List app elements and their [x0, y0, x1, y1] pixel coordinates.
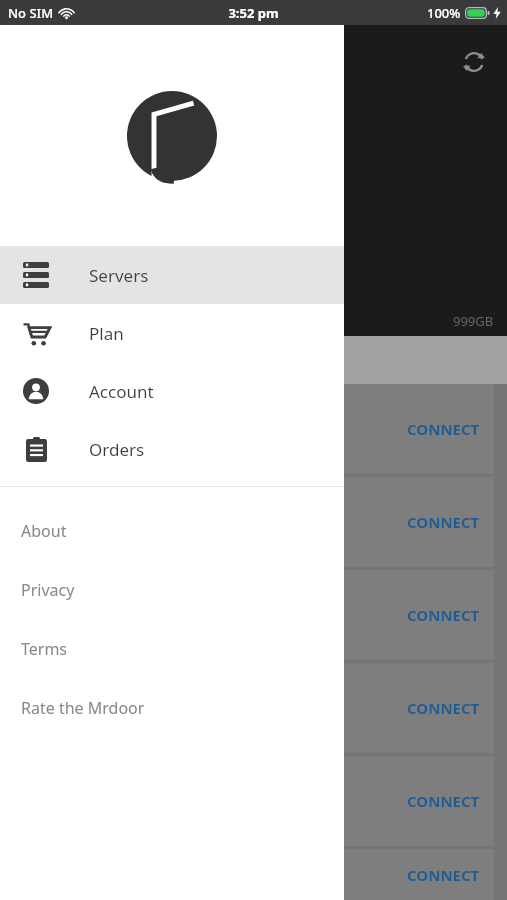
button[interactable]: Servers — [0, 246, 344, 304]
button[interactable]: About — [0, 501, 344, 560]
staticText: Rate the Mrdoor — [21, 697, 145, 719]
button[interactable]: Rate the Mrdoor — [0, 678, 344, 737]
button[interactable]: CONNECT — [0, 570, 494, 660]
button[interactable]: Plan — [0, 304, 344, 362]
button[interactable]: CONNECT — [0, 384, 494, 474]
staticText: Terms — [21, 638, 68, 660]
button[interactable]: CONNECT — [0, 477, 494, 567]
button[interactable]: Renew — [0, 336, 507, 384]
button[interactable]: CONNECT — [0, 756, 494, 846]
staticText: 3:52 pm — [228, 4, 279, 22]
button[interactable]: Account — [0, 362, 344, 420]
staticText: Account — [89, 380, 154, 403]
button[interactable]: CONNECT — [0, 663, 494, 753]
button[interactable]: Refresh — [457, 45, 491, 79]
staticText: CONNECT — [407, 865, 480, 885]
staticText: About — [21, 520, 67, 542]
button[interactable]: CONNECT — [0, 849, 494, 900]
staticText: 100% — [427, 4, 461, 22]
staticText: Plan — [89, 322, 124, 345]
staticText: CONNECT — [407, 419, 480, 439]
staticText: Servers — [89, 264, 149, 287]
staticText: CONNECT — [407, 698, 480, 718]
staticText: CONNECT — [407, 791, 480, 811]
button[interactable]: Terms — [0, 619, 344, 678]
staticText: No SIM — [8, 4, 54, 22]
staticText: 999GB — [453, 312, 494, 330]
button[interactable]: Orders — [0, 420, 344, 478]
staticText: CONNECT — [407, 605, 480, 625]
staticText: CONNECT — [407, 512, 480, 532]
staticText: Privacy — [21, 579, 75, 601]
staticText: Orders — [89, 438, 145, 461]
button[interactable]: Privacy — [0, 560, 344, 619]
